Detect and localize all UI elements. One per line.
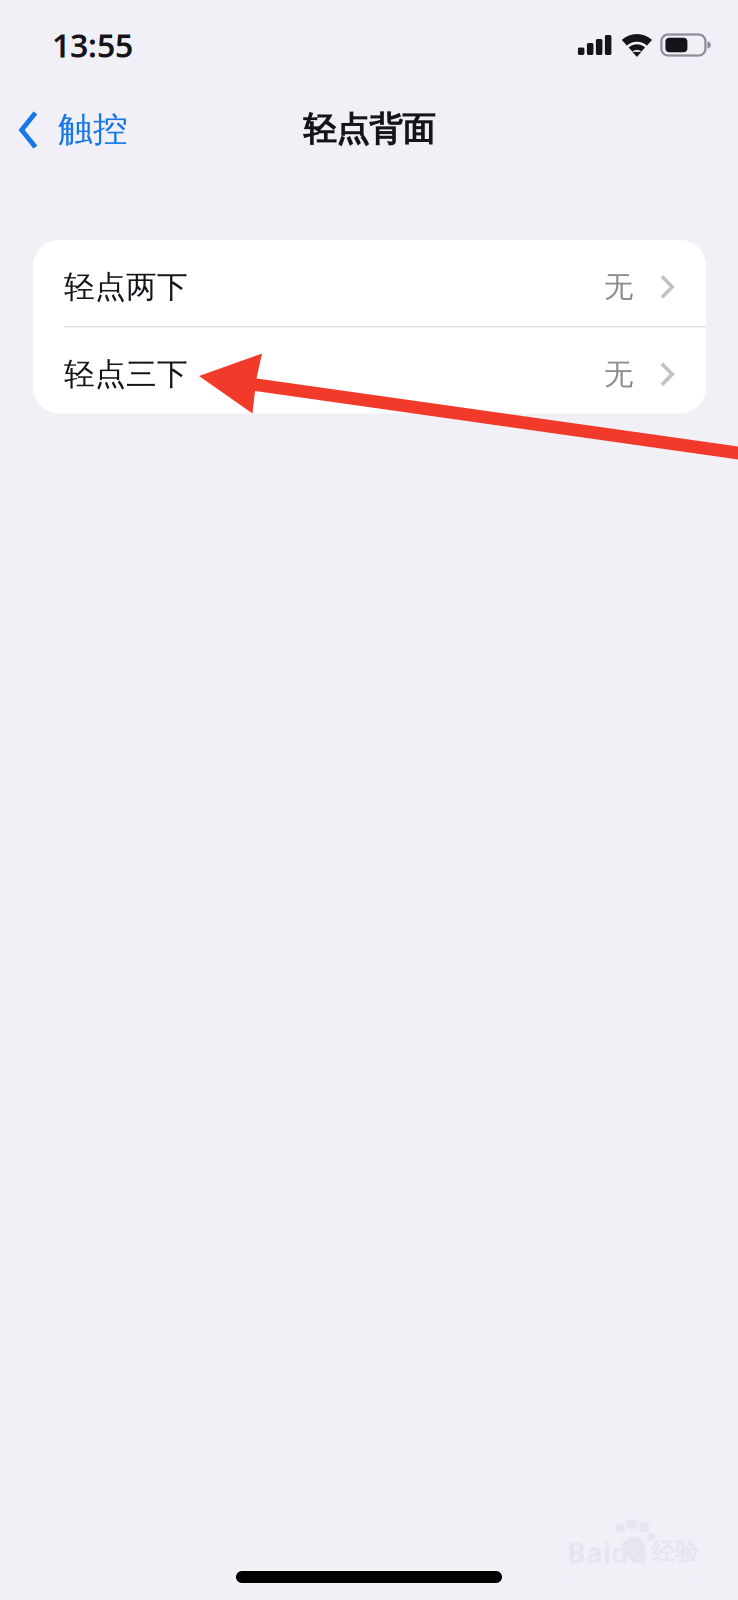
staticText: 经验 [651,1537,699,1566]
button[interactable]: 轻点两下 [33,240,706,326]
staticText: 无 [604,269,633,305]
staticText: Baidu [567,1534,647,1571]
staticText: 轻点两下 [64,268,188,306]
staticText: 触控 [58,108,128,151]
button[interactable]: 触控 [0,90,144,160]
staticText: 无 [604,356,633,392]
button[interactable]: 轻点三下 [33,327,706,413]
staticText: 13:55 [52,24,133,66]
staticText: 轻点三下 [64,356,188,393]
staticText: 轻点背面 [303,109,435,150]
